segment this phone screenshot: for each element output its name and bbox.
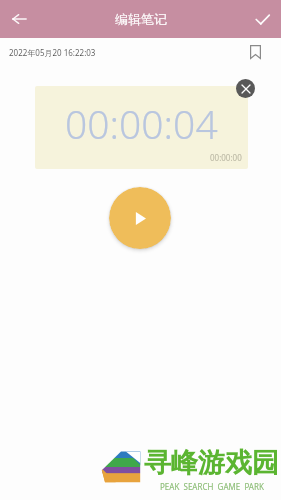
button[interactable]: Play — [109, 187, 171, 249]
staticText: 编辑笔记 — [115, 11, 167, 27]
staticText: 00:00:00 — [210, 152, 242, 163]
button[interactable]: Bookmark — [245, 42, 265, 62]
button[interactable]: Save — [243, 0, 281, 38]
button[interactable]: 00:00:04 — [35, 86, 248, 169]
staticText: 00:00:04 — [65, 97, 218, 150]
staticText: 2022年05月20 16:22:03 — [9, 47, 96, 58]
staticText: 寻峰游戏园 — [144, 446, 279, 480]
button[interactable]: Back — [0, 0, 38, 38]
staticText: PEAK SEARCH GAME PARK — [160, 481, 264, 492]
button[interactable]: Close — [236, 79, 255, 98]
